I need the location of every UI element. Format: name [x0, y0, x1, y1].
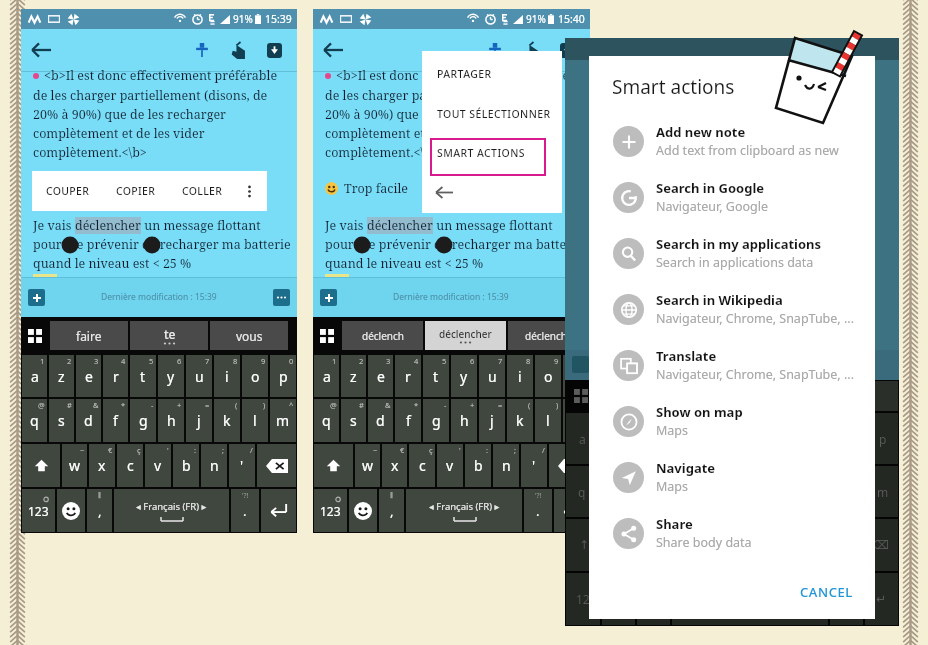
button[interactable]: d: [368, 399, 393, 442]
button[interactable]: h: [158, 399, 184, 442]
button[interactable]: CANCEL: [794, 579, 859, 605]
button[interactable]: l: [242, 399, 268, 442]
button[interactable]: Navigate: [589, 449, 875, 505]
button[interactable]: PARTAGER: [437, 67, 492, 81]
button[interactable]: m: [270, 399, 296, 442]
button[interactable]: u: [186, 355, 212, 397]
button[interactable]: x: [382, 444, 407, 487]
button[interactable]: o: [535, 355, 561, 397]
button[interactable]: Emoji: [57, 489, 85, 532]
button[interactable]: k: [507, 399, 533, 442]
button[interactable]: COLLER: [182, 184, 223, 198]
button[interactable]: i: [507, 355, 533, 397]
button[interactable]: c: [117, 444, 143, 487]
button[interactable]: y: [451, 355, 477, 397]
button[interactable]: te: [130, 321, 208, 350]
button[interactable]: Shift: [22, 444, 60, 487]
button[interactable]: TOUT SÉLECTIONNER: [437, 107, 551, 121]
button[interactable]: i: [214, 355, 240, 397]
button[interactable]: Save: [549, 32, 585, 68]
button[interactable]: .: [524, 489, 552, 532]
button[interactable]: Back: [26, 35, 56, 65]
button[interactable]: o: [242, 355, 268, 397]
button[interactable]: t: [423, 355, 449, 397]
button[interactable]: Add: [28, 289, 45, 306]
button[interactable]: v: [145, 444, 171, 487]
button[interactable]: s: [341, 399, 366, 442]
button[interactable]: v: [437, 444, 463, 487]
button[interactable]: .: [231, 489, 259, 532]
button[interactable]: d: [76, 399, 101, 442]
button[interactable]: g: [423, 399, 449, 442]
button[interactable]: vous: [210, 321, 288, 350]
button[interactable]: l: [535, 399, 561, 442]
button[interactable]: déclench: [342, 321, 423, 350]
button[interactable]: 123: [314, 489, 347, 532]
button[interactable]: z: [49, 355, 74, 397]
button[interactable]: g: [130, 399, 156, 442]
button[interactable]: SMART ACTIONS: [430, 138, 546, 176]
button[interactable]: Share: [589, 505, 875, 561]
button[interactable]: More: [273, 289, 290, 306]
button[interactable]: ◂ Français (FR) ▸: [406, 489, 522, 532]
button[interactable]: z: [341, 355, 366, 397]
button[interactable]: Shift: [314, 444, 353, 487]
button[interactable]: Keyboard menu: [313, 317, 341, 354]
button[interactable]: 123: [22, 489, 55, 532]
button[interactable]: x: [89, 444, 115, 487]
button[interactable]: w: [355, 444, 380, 487]
button[interactable]: Show on map: [589, 393, 875, 449]
button[interactable]: déclencher: [425, 321, 506, 350]
button[interactable]: a: [314, 355, 339, 397]
button[interactable]: Back: [429, 177, 459, 207]
button[interactable]: ,: [87, 489, 112, 532]
button[interactable]: More options: [236, 178, 262, 204]
button[interactable]: ◂ Français (FR) ▸: [114, 489, 229, 532]
button[interactable]: Pin: [184, 32, 220, 68]
button[interactable]: n: [493, 444, 519, 487]
button[interactable]: ': [229, 444, 255, 487]
button[interactable]: e: [368, 355, 393, 397]
button[interactable]: a: [22, 355, 47, 397]
button[interactable]: h: [451, 399, 477, 442]
button[interactable]: COUPER: [46, 184, 90, 198]
button[interactable]: Backspace: [549, 444, 589, 487]
button[interactable]: Keyboard menu: [21, 317, 49, 354]
button[interactable]: Enter: [554, 489, 589, 532]
button[interactable]: COPIER: [116, 184, 156, 198]
button[interactable]: déclenché: [508, 321, 589, 350]
button[interactable]: q: [314, 399, 339, 442]
button[interactable]: Search in Wikipedia: [589, 281, 875, 337]
button[interactable]: Search in Google: [589, 169, 875, 225]
button[interactable]: b: [173, 444, 199, 487]
button[interactable]: j: [186, 399, 212, 442]
button[interactable]: u: [479, 355, 505, 397]
button[interactable]: y: [158, 355, 184, 397]
button[interactable]: Back: [318, 35, 348, 65]
button[interactable]: r: [395, 355, 421, 397]
button[interactable]: f: [395, 399, 421, 442]
button[interactable]: ': [521, 444, 547, 487]
button[interactable]: b: [465, 444, 491, 487]
button[interactable]: Add: [320, 289, 337, 306]
button[interactable]: c: [409, 444, 435, 487]
button[interactable]: Add new note: [589, 113, 875, 169]
button[interactable]: Search in my applications: [589, 225, 875, 281]
button[interactable]: q: [22, 399, 47, 442]
button[interactable]: k: [214, 399, 240, 442]
button[interactable]: w: [62, 444, 87, 487]
button[interactable]: Pin: [477, 32, 513, 68]
button[interactable]: p: [270, 355, 296, 397]
button[interactable]: s: [49, 399, 74, 442]
button[interactable]: faire: [50, 321, 128, 350]
button[interactable]: e: [76, 355, 101, 397]
button[interactable]: n: [201, 444, 227, 487]
button[interactable]: p: [563, 355, 589, 397]
button[interactable]: ,: [379, 489, 404, 532]
button[interactable]: j: [479, 399, 505, 442]
button[interactable]: m: [563, 399, 589, 442]
button[interactable]: Emoji: [349, 489, 377, 532]
button[interactable]: t: [130, 355, 156, 397]
button[interactable]: Enter: [261, 489, 296, 532]
